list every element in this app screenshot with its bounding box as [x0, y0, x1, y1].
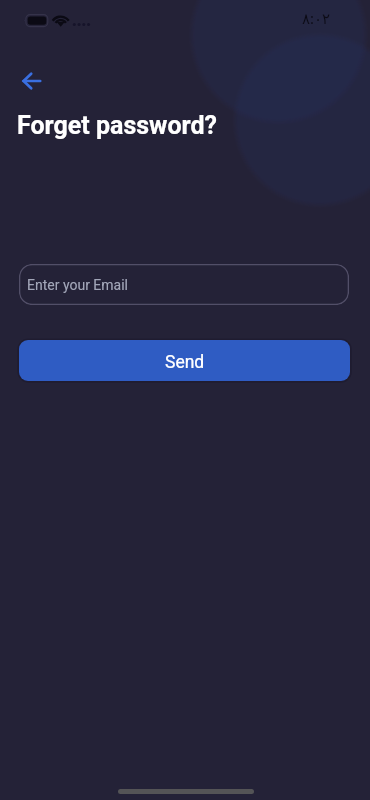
staticText: ۸:۰۲ [302, 10, 331, 28]
button[interactable]: Enter your Email [19, 264, 349, 305]
button[interactable]: Back [11, 64, 56, 98]
staticText: Send [165, 352, 205, 373]
button[interactable]: Send [19, 340, 350, 381]
staticText: Forget password? [17, 111, 217, 140]
staticText: Enter your Email [27, 277, 129, 293]
